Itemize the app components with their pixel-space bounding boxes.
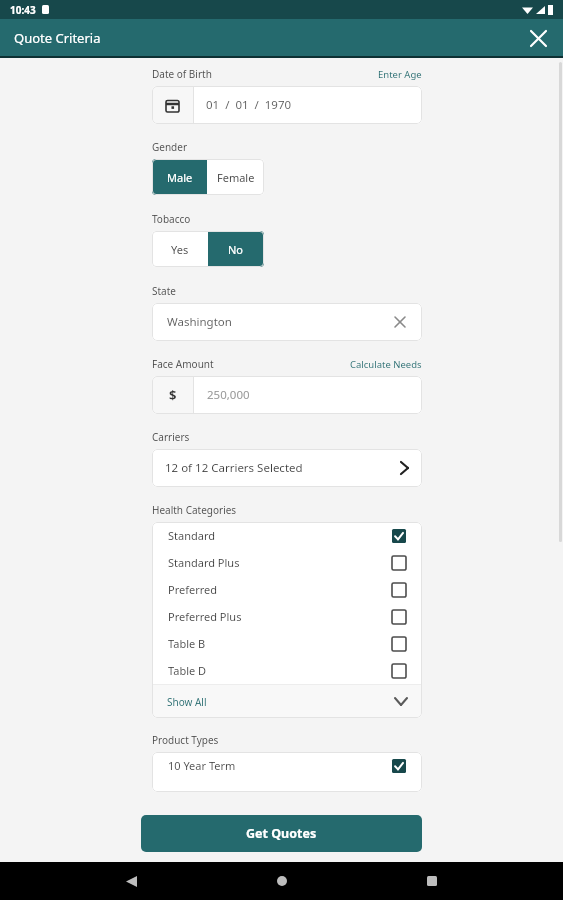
staticText: Male	[167, 170, 193, 185]
staticText: Quote Criteria	[14, 29, 101, 47]
button[interactable]: Back	[112, 862, 150, 900]
staticText: 10:43	[10, 3, 36, 17]
staticText: 10 Year Term	[168, 758, 392, 773]
button[interactable]: Pick date	[152, 86, 422, 124]
staticText: Gender	[152, 140, 188, 154]
button[interactable]: Standard Plus	[152, 549, 422, 576]
staticText: State	[152, 284, 176, 298]
staticText: Preferred	[168, 582, 392, 597]
staticText: Standard	[168, 528, 392, 543]
button[interactable]: Table B	[152, 630, 422, 657]
button[interactable]: Female	[207, 159, 264, 195]
staticText: Tobacco	[152, 212, 191, 226]
staticText: Yes	[171, 242, 189, 257]
button[interactable]: Table D	[152, 657, 422, 684]
staticText: Table B	[168, 636, 392, 651]
button[interactable]: $	[152, 376, 422, 414]
staticText: 250,000	[207, 387, 250, 403]
button[interactable]: 10 Year Term	[152, 752, 422, 779]
staticText: $	[169, 386, 177, 404]
staticText: Female	[217, 170, 255, 185]
button[interactable]: Pick date	[152, 86, 193, 124]
button[interactable]: No	[208, 231, 264, 267]
button[interactable]: Close	[521, 21, 555, 55]
button[interactable]: Show All	[152, 685, 422, 718]
staticText: Calculate Needs	[350, 358, 422, 371]
staticText: Preferred Plus	[168, 609, 392, 624]
button[interactable]: Enter Age	[378, 68, 422, 81]
button[interactable]: Get Quotes	[141, 815, 422, 852]
button[interactable]: Standard	[152, 522, 422, 549]
staticText: Show All	[167, 695, 394, 709]
button[interactable]: Yes	[152, 231, 208, 267]
staticText: No	[228, 242, 244, 257]
button[interactable]: 12 of 12 Carriers Selected	[152, 449, 422, 487]
button[interactable]: Preferred Plus	[152, 603, 422, 630]
button[interactable]: Preferred	[152, 576, 422, 603]
button[interactable]: Clear state	[388, 310, 412, 334]
staticText: Face Amount	[152, 357, 350, 371]
staticText: Washington	[167, 314, 388, 330]
button[interactable]: Male	[152, 159, 207, 195]
staticText: 01 / 01 / 1970	[206, 97, 292, 113]
staticText: Date of Birth	[152, 67, 378, 81]
button[interactable]: Recent apps	[413, 862, 451, 900]
staticText: Standard Plus	[168, 555, 392, 570]
button[interactable]: Washington	[152, 303, 422, 341]
staticText: Product Types	[152, 733, 219, 747]
staticText: Enter Age	[378, 68, 422, 81]
staticText: Carriers	[152, 430, 190, 444]
staticText: Get Quotes	[246, 825, 317, 842]
staticText: Health Categories	[152, 503, 237, 517]
staticText: Table D	[168, 663, 392, 678]
button[interactable]: Home	[263, 862, 301, 900]
staticText: 12 of 12 Carriers Selected	[165, 460, 400, 476]
button[interactable]: Calculate Needs	[350, 358, 422, 371]
